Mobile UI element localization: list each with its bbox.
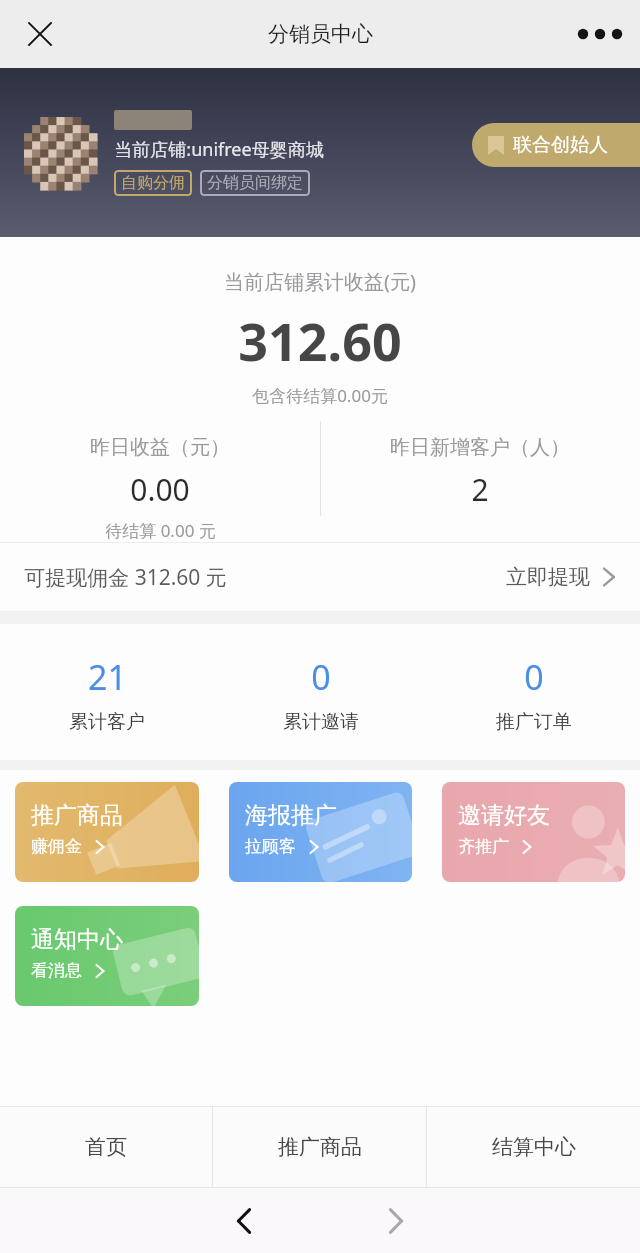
staticText: 推广商品 bbox=[278, 1134, 362, 1160]
staticText: 海报推广 bbox=[245, 801, 337, 830]
staticText: 0.00 bbox=[130, 469, 190, 510]
button[interactable]: 推广商品 bbox=[15, 782, 199, 882]
button[interactable]: Forward bbox=[364, 1189, 428, 1253]
staticText: 312.60 bbox=[238, 305, 402, 376]
button[interactable]: Back bbox=[212, 1189, 276, 1253]
staticText: 通知中心 bbox=[31, 925, 123, 954]
staticText: 0 bbox=[311, 654, 331, 700]
staticText: 看消息 bbox=[31, 960, 82, 981]
button[interactable]: 自购分佣 bbox=[121, 173, 185, 193]
staticText: 累计客户 bbox=[69, 710, 145, 734]
button[interactable]: 0 bbox=[427, 654, 640, 734]
staticText: 21 bbox=[88, 654, 127, 700]
staticText: 累计邀请 bbox=[283, 710, 359, 734]
staticText: 联合创始人 bbox=[513, 133, 608, 157]
staticText: 推广商品 bbox=[31, 801, 123, 830]
button[interactable]: 邀请好友 bbox=[442, 782, 625, 882]
button[interactable]: 推广商品 bbox=[213, 1107, 426, 1187]
staticText: 首页 bbox=[85, 1134, 127, 1160]
staticText: 分销员中心 bbox=[268, 21, 373, 47]
staticText: 昨日收益（元） bbox=[90, 435, 230, 460]
staticText: 当前店铺累计收益(元) bbox=[224, 268, 416, 295]
button[interactable]: 0 bbox=[214, 654, 427, 734]
staticText: 0 bbox=[524, 654, 544, 700]
staticText: 赚佣金 bbox=[31, 836, 82, 857]
staticText: 邀请好友 bbox=[458, 801, 550, 830]
button[interactable]: 昨日收益（元） bbox=[0, 435, 320, 542]
button[interactable]: 海报推广 bbox=[229, 782, 412, 882]
staticText: 当前店铺:unifree母婴商城 bbox=[114, 137, 324, 162]
staticText: 昨日新增客户（人） bbox=[390, 435, 570, 460]
staticText: 待结算 0.00 元 bbox=[105, 519, 216, 542]
staticText: 拉顾客 bbox=[245, 836, 296, 857]
staticText: 可提现佣金 312.60 元 bbox=[24, 563, 227, 592]
button[interactable]: More options bbox=[572, 6, 628, 62]
button[interactable]: 首页 bbox=[0, 1107, 212, 1187]
staticText: 结算中心 bbox=[492, 1134, 576, 1160]
button[interactable]: 分销员间绑定 bbox=[207, 173, 303, 193]
button[interactable]: 结算中心 bbox=[427, 1107, 640, 1187]
button[interactable]: 可提现佣金 312.60 元 bbox=[0, 543, 640, 611]
staticText: 分销员间绑定 bbox=[207, 173, 303, 193]
button[interactable]: 昨日新增客户（人） bbox=[320, 435, 640, 510]
button[interactable]: 21 bbox=[0, 654, 214, 734]
staticText: 自购分佣 bbox=[121, 173, 185, 193]
staticText: 推广订单 bbox=[496, 710, 572, 734]
button[interactable]: 通知中心 bbox=[15, 906, 199, 1006]
staticText: 2 bbox=[471, 469, 489, 510]
staticText: 立即提现 bbox=[506, 564, 590, 590]
staticText: 包含待结算0.00元 bbox=[252, 384, 388, 407]
button[interactable]: 联合创始人 bbox=[472, 123, 640, 167]
staticText: 齐推广 bbox=[458, 836, 509, 857]
button[interactable]: Close bbox=[12, 6, 68, 62]
